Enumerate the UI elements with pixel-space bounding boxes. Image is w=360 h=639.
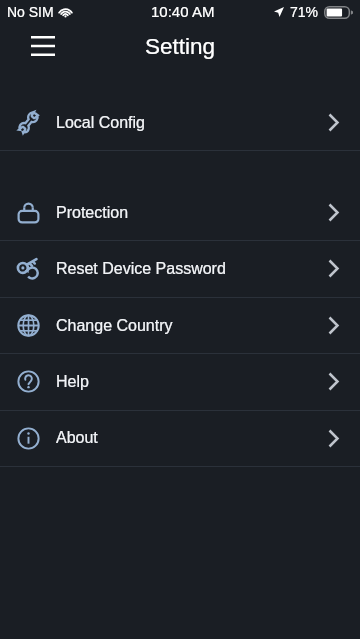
button[interactable]: Protection xyxy=(0,184,360,241)
button[interactable]: Change Country xyxy=(0,297,360,354)
staticText: No SIM xyxy=(7,4,54,20)
staticText: Reset Device Password xyxy=(56,260,319,278)
button[interactable]: Reset Device Password xyxy=(0,240,360,297)
staticText: 10:40 AM xyxy=(151,3,215,20)
button[interactable]: About xyxy=(0,410,360,466)
button[interactable]: Help xyxy=(0,353,360,410)
staticText: 71% xyxy=(290,4,319,20)
staticText: Local Config xyxy=(56,114,319,132)
staticText: Protection xyxy=(56,204,319,222)
button[interactable]: Local Config xyxy=(0,94,360,151)
staticText: Change Country xyxy=(56,317,319,335)
staticText: About xyxy=(56,429,319,447)
staticText: Help xyxy=(56,373,319,391)
staticText: Setting xyxy=(145,34,216,59)
button[interactable]: Menu xyxy=(19,23,67,69)
